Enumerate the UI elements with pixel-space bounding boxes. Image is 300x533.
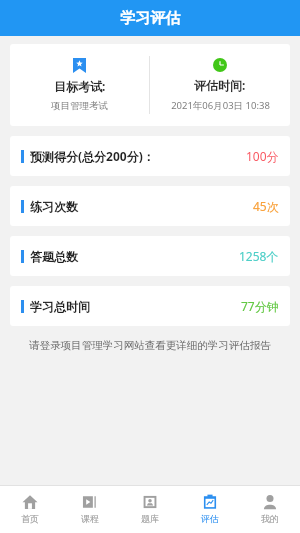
other: 课程 [82, 494, 98, 510]
staticText: 评估 [201, 513, 219, 524]
staticText: 预测得分(总分200分)： [30, 148, 155, 164]
staticText: 题库 [141, 513, 159, 524]
staticText: 我的 [261, 513, 279, 524]
button[interactable]: 课程 [60, 485, 120, 533]
staticText: 1258个 [239, 248, 279, 264]
button[interactable]: 学习总时间 [10, 286, 290, 326]
staticText: 2021年06月03日 10:38 [171, 99, 270, 112]
other: 首页 [22, 494, 38, 510]
staticText: 课程 [81, 513, 99, 524]
button[interactable]: 我的 [240, 485, 300, 533]
button[interactable]: 首页 [0, 485, 60, 533]
staticText: 100分 [246, 148, 279, 164]
other: 题库 [142, 494, 158, 510]
staticText: 答题总数 [30, 249, 78, 264]
staticText: 请登录项目管理学习网站查看更详细的学习评估报告 [10, 339, 290, 352]
other: 我的 [262, 494, 278, 510]
staticText: 77分钟 [241, 298, 279, 314]
button[interactable]: 题库 [120, 485, 180, 533]
staticText: 学习评估 [120, 9, 180, 28]
button[interactable]: 目标考试: [10, 44, 290, 126]
button[interactable]: 预测得分(总分200分)： [10, 136, 290, 176]
staticText: 目标考试: [54, 78, 106, 94]
button[interactable]: 评估 [180, 485, 240, 533]
staticText: 首页 [21, 513, 39, 524]
staticText: 45次 [253, 198, 279, 214]
staticText: 学习总时间 [30, 299, 90, 314]
button[interactable]: 练习次数 [10, 186, 290, 226]
staticText: 练习次数 [30, 199, 78, 214]
button[interactable]: 答题总数 [10, 236, 290, 276]
other: 评估 [202, 494, 218, 510]
staticText: 评估时间: [194, 77, 246, 93]
staticText: 项目管理考试 [51, 100, 108, 112]
